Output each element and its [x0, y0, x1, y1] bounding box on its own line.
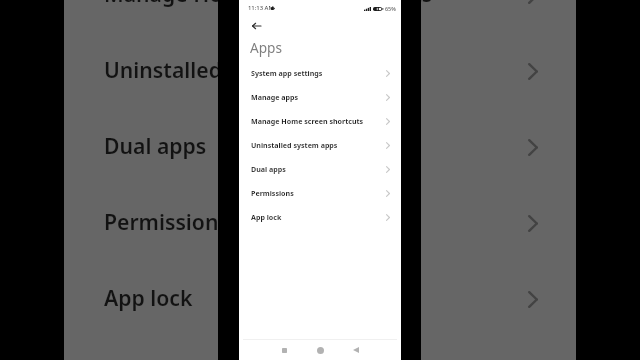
button[interactable]: App lock — [239, 205, 401, 229]
staticText: Dual apps — [251, 164, 286, 174]
button[interactable]: Manage apps — [239, 85, 401, 109]
button[interactable]: Recent apps — [276, 342, 292, 358]
staticText: App lock — [104, 283, 193, 312]
staticText: Uninstalled system apps — [104, 55, 357, 84]
staticText: Uninstalled system apps — [251, 140, 338, 150]
button[interactable]: Dual apps — [239, 157, 401, 181]
button[interactable]: Home — [312, 342, 328, 358]
button[interactable]: System app settings — [239, 61, 401, 85]
button[interactable]: Back — [348, 342, 364, 358]
button[interactable]: Uninstalled system apps — [239, 133, 401, 157]
staticText: App lock — [251, 212, 282, 222]
staticText: Apps — [250, 38, 282, 57]
button[interactable]: Permissions — [239, 181, 401, 205]
staticText: Dual apps — [104, 131, 207, 160]
staticText: Manage Home screen shortcuts — [251, 116, 364, 126]
staticText: 11:13 AM — [248, 4, 274, 12]
button[interactable]: Manage Home screen shortcuts — [239, 109, 401, 133]
staticText: Permissions — [251, 188, 294, 198]
staticText: Manage Home screen shortcuts — [104, 0, 433, 8]
staticText: Manage apps — [251, 92, 299, 102]
button[interactable]: Back — [247, 16, 266, 35]
staticText: System app settings — [251, 68, 323, 78]
staticText: Permissions — [104, 207, 229, 236]
staticText: 65% — [385, 5, 396, 12]
